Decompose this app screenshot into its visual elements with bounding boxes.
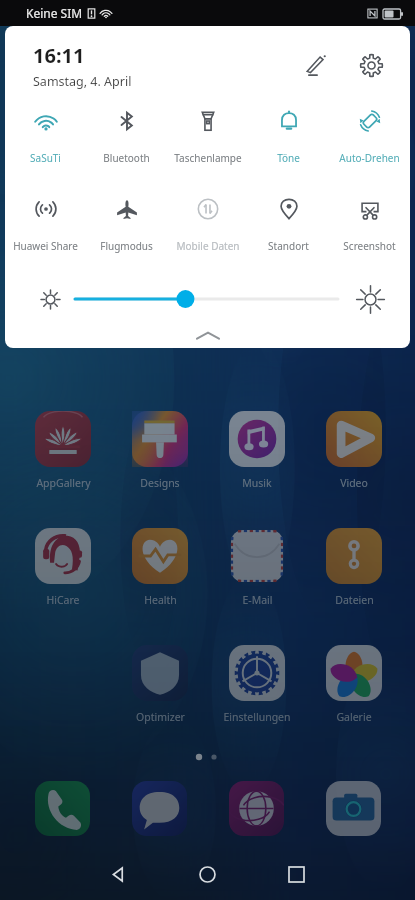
staticText: Samstag, 4. April — [33, 73, 132, 90]
staticText: Musik — [242, 476, 272, 490]
staticText: 16:11 — [33, 42, 85, 69]
staticText: Standort — [268, 239, 309, 253]
button[interactable]: Helligkeit niedrig — [32, 281, 68, 317]
staticText: Video — [340, 476, 368, 490]
staticText: SaSuTi — [30, 151, 61, 165]
staticText: Screenshot — [343, 239, 396, 253]
button[interactable]: Optimizer — [132, 645, 188, 701]
button[interactable]: Töne — [248, 105, 329, 167]
button[interactable]: HiCare — [35, 528, 91, 584]
staticText: Töne — [277, 151, 300, 165]
button[interactable]: Screenshot — [329, 193, 410, 255]
staticText: Bluetooth — [103, 151, 150, 165]
button[interactable]: Standort — [248, 193, 329, 255]
button[interactable]: Helligkeit hoch — [350, 279, 390, 319]
button[interactable]: Designs — [132, 411, 188, 467]
button[interactable]: Telefon — [35, 781, 90, 836]
button[interactable]: Übersicht — [252, 850, 341, 898]
button[interactable]: Mobile Daten — [167, 193, 248, 255]
staticText: Einstellungen — [223, 710, 291, 724]
button[interactable]: Browser — [229, 781, 284, 836]
button[interactable]: Health — [132, 528, 188, 584]
staticText: Dateien — [335, 593, 374, 607]
button[interactable]: Nachrichten — [132, 781, 187, 836]
staticText: Health — [144, 593, 177, 607]
button[interactable]: Musik — [229, 411, 285, 467]
staticText: AppGallery — [36, 476, 91, 490]
staticText: Auto-Drehen — [339, 151, 400, 165]
button[interactable]: Einstellungen — [229, 645, 285, 701]
button[interactable]: Auto-Drehen — [329, 105, 410, 167]
staticText: Taschenlampe — [174, 151, 242, 165]
button[interactable]: Bearbeiten — [295, 45, 335, 85]
staticText: Keine SIM — [26, 5, 83, 21]
button[interactable]: Zurück — [74, 850, 163, 898]
staticText: Mobile Daten — [176, 239, 240, 253]
staticText: HiCare — [46, 593, 80, 607]
button[interactable]: AppGallery — [35, 411, 91, 467]
button[interactable]: Galerie — [326, 645, 382, 701]
staticText: Designs — [140, 476, 180, 490]
staticText: Optimizer — [136, 710, 185, 724]
button[interactable]: Helligkeitsregler — [75, 288, 338, 310]
staticText: Galerie — [336, 710, 372, 724]
button[interactable]: Startseite — [163, 850, 252, 898]
staticText: Flugmodus — [100, 239, 153, 253]
staticText: E-Mail — [242, 593, 273, 607]
button[interactable]: Einstellungen — [351, 45, 391, 85]
button[interactable]: Taschenlampe — [167, 105, 248, 167]
button[interactable]: Dateien — [326, 528, 382, 584]
button[interactable]: Flugmodus — [86, 193, 167, 255]
button[interactable]: Kamera — [326, 781, 381, 836]
staticText: Huawei Share — [13, 239, 78, 253]
button[interactable]: Bluetooth — [86, 105, 167, 167]
button[interactable]: SaSuTi — [5, 105, 86, 167]
button[interactable]: Huawei Share — [5, 193, 86, 255]
button[interactable]: E-Mail — [229, 528, 285, 584]
button[interactable]: Video — [326, 411, 382, 467]
button[interactable]: Einklappen — [5, 322, 410, 348]
